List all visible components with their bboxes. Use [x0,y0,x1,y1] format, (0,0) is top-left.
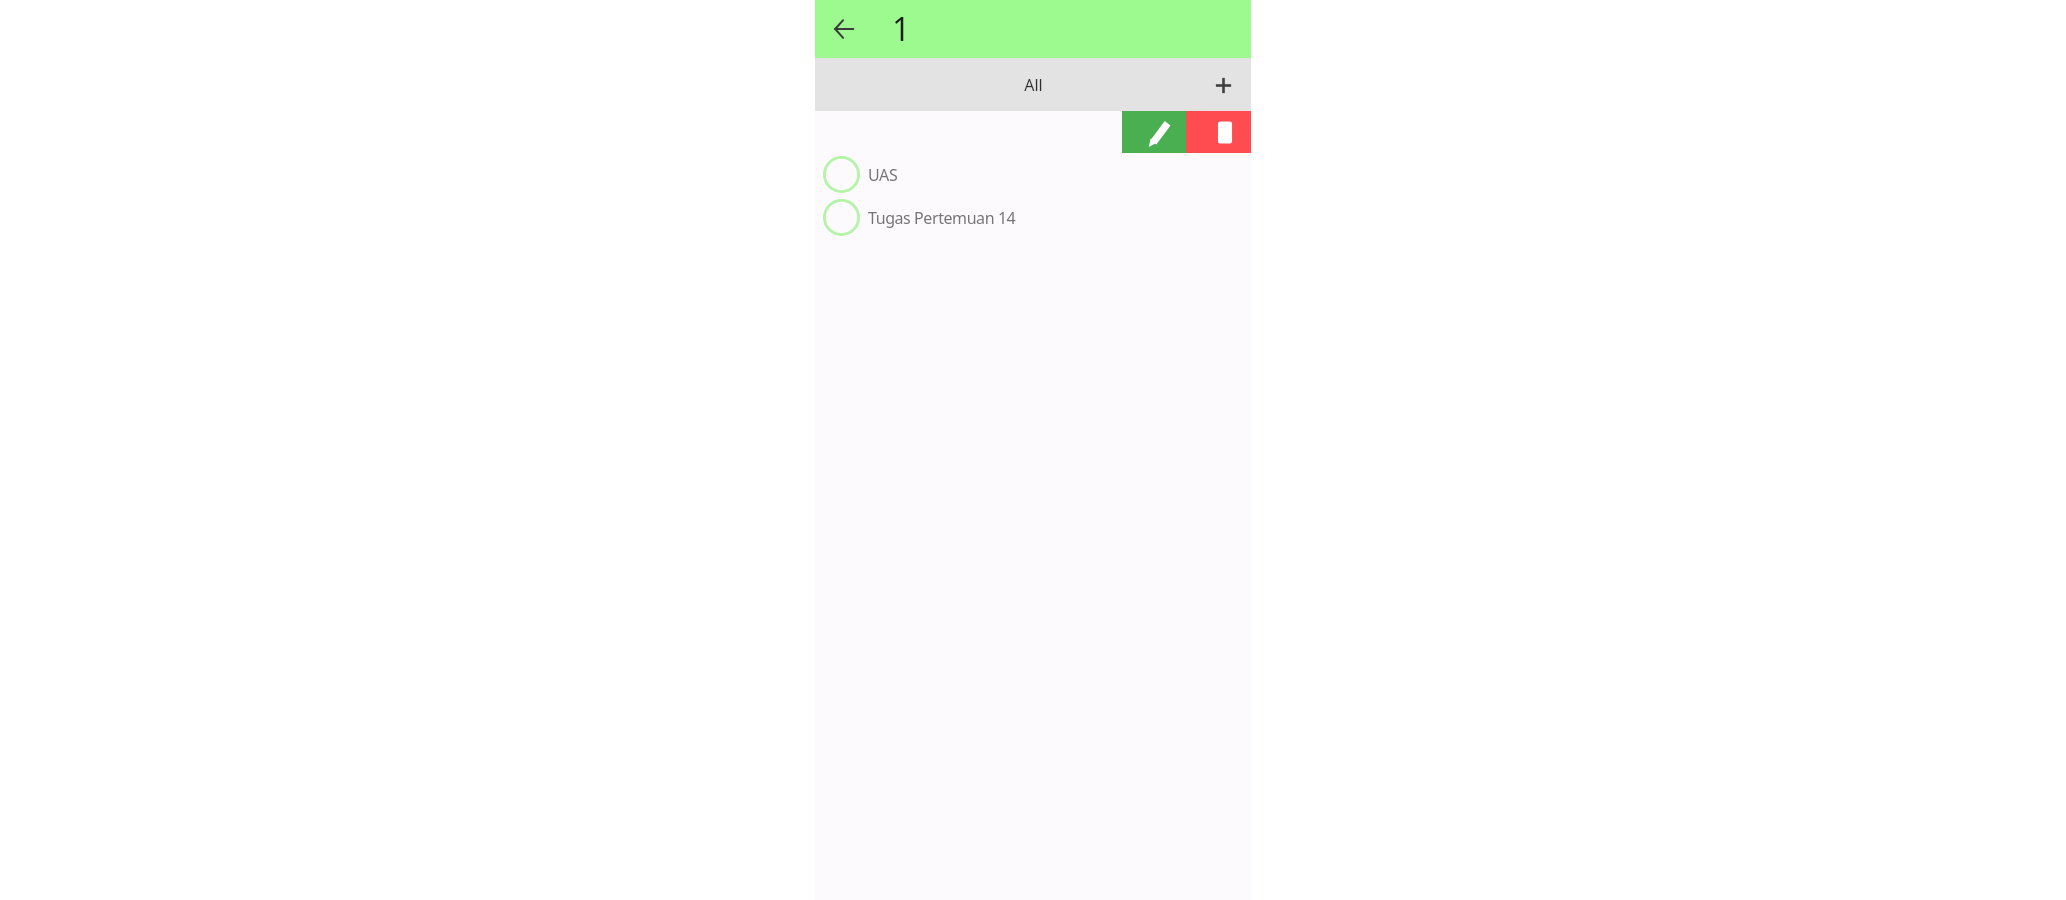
button[interactable]: Tugas Pertemuan 14 [815,196,1251,239]
staticText: All [1024,74,1043,96]
button[interactable]: UAS [815,153,1251,196]
button[interactable]: Delete [1186,111,1251,153]
button[interactable]: Add task [1209,71,1237,99]
staticText: UAS [868,164,898,186]
staticText: 1 [892,7,911,51]
button[interactable]: All [1024,74,1043,96]
button[interactable]: Edit [1122,111,1186,153]
staticText: Tugas Pertemuan 14 [868,207,1016,229]
button[interactable]: Back [829,14,859,44]
